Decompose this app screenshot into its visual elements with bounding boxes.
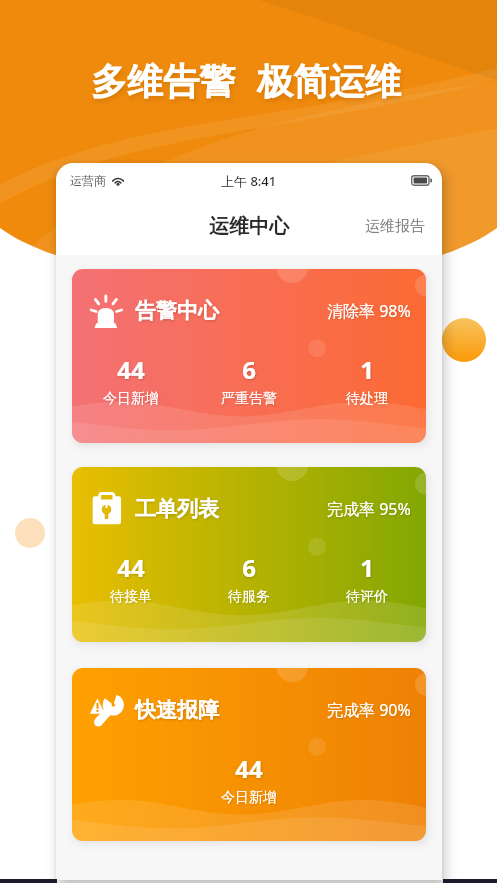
staticText: 完成率 95% <box>327 498 411 520</box>
staticText: 运维中心 <box>209 214 289 239</box>
staticText: 待接单 <box>110 588 152 606</box>
staticText: 极简运维 <box>257 59 401 104</box>
staticText: 严重告警 <box>221 390 277 408</box>
button[interactable]: 运维报告 <box>348 207 442 246</box>
staticText: 6 <box>242 551 256 584</box>
staticText: 1 <box>360 551 374 584</box>
staticText: 上午 8:41 <box>221 172 277 190</box>
staticText: 今日新增 <box>221 789 277 807</box>
staticText: 清除率 98% <box>327 300 411 322</box>
staticText: 运维报告 <box>365 217 425 236</box>
button[interactable]: 工单列表 <box>72 467 426 642</box>
staticText: 工单列表 <box>135 496 219 522</box>
button[interactable]: 快速报障 <box>72 668 426 841</box>
staticText: 告警中心 <box>135 298 219 324</box>
button[interactable]: 告警中心 <box>72 269 426 443</box>
staticText: 44 <box>117 353 145 386</box>
staticText: 今日新增 <box>103 390 159 408</box>
staticText: 44 <box>117 551 145 584</box>
staticText: 待评价 <box>346 588 388 606</box>
staticText: 运营商 <box>70 173 106 188</box>
staticText: 待服务 <box>228 588 270 606</box>
staticText: 6 <box>242 353 256 386</box>
staticText: 完成率 90% <box>327 699 411 721</box>
staticText: 快速报障 <box>135 697 219 723</box>
staticText: 待处理 <box>346 390 388 408</box>
staticText: 1 <box>360 353 374 386</box>
staticText: 多维告警 <box>91 59 235 104</box>
staticText: 44 <box>235 752 263 785</box>
